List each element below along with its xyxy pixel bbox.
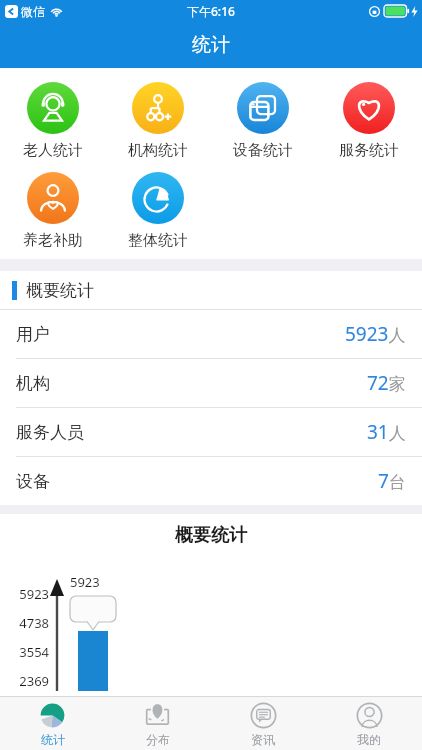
staticText: 4738 [19, 614, 49, 632]
other: 统计 [39, 702, 66, 729]
button[interactable]: 我的 [316, 697, 422, 750]
staticText: 老人统计 [23, 141, 83, 160]
staticText: 72家 [367, 370, 406, 396]
button[interactable]: 整体统计 [105, 166, 210, 256]
other: 资讯 [250, 702, 277, 729]
staticText: 7台 [378, 468, 406, 494]
button[interactable]: 机构 [0, 359, 422, 408]
other: 分布 [144, 702, 171, 729]
button[interactable]: 用户 [0, 310, 422, 359]
button[interactable]: 养老补助 [0, 166, 105, 256]
staticText: 养老补助 [23, 231, 83, 250]
staticText: 服务人员 [16, 422, 84, 443]
button[interactable]: 服务人员 [0, 408, 422, 457]
staticText: 整体统计 [128, 231, 188, 250]
staticText: 设备 [16, 471, 50, 492]
staticText: 统计 [192, 33, 230, 57]
staticText: 概要统计 [175, 524, 247, 547]
staticText: 机构统计 [128, 141, 188, 160]
staticText: 5923人 [345, 321, 406, 347]
staticText: 3554 [19, 643, 49, 661]
button[interactable]: 统计 [0, 697, 105, 750]
button[interactable]: 机构统计 [105, 76, 210, 166]
staticText: 我的 [357, 732, 381, 747]
button[interactable]: 老人统计 [0, 76, 105, 166]
staticText: 微信 [21, 4, 45, 19]
staticText: 资讯 [251, 732, 275, 747]
staticText: 用户 [16, 324, 50, 345]
button[interactable]: 设备 [0, 457, 422, 505]
staticText: 5923 [70, 573, 100, 591]
button[interactable]: 设备统计 [210, 76, 316, 166]
staticText: 5923 [19, 585, 49, 603]
other: 我的 [356, 702, 383, 729]
staticText: 概要统计 [26, 280, 94, 301]
staticText: 设备统计 [233, 141, 293, 160]
staticText: 机构 [16, 373, 50, 394]
button[interactable]: 分布 [105, 697, 210, 750]
staticText: 下午6:16 [187, 3, 235, 19]
staticText: 服务统计 [339, 141, 399, 160]
staticText: 2369 [19, 672, 49, 690]
staticText: 分布 [146, 732, 170, 747]
button[interactable]: 服务统计 [316, 76, 422, 166]
staticText: 统计 [41, 732, 65, 747]
staticText: 31人 [367, 419, 406, 445]
button[interactable]: 资讯 [210, 697, 316, 750]
